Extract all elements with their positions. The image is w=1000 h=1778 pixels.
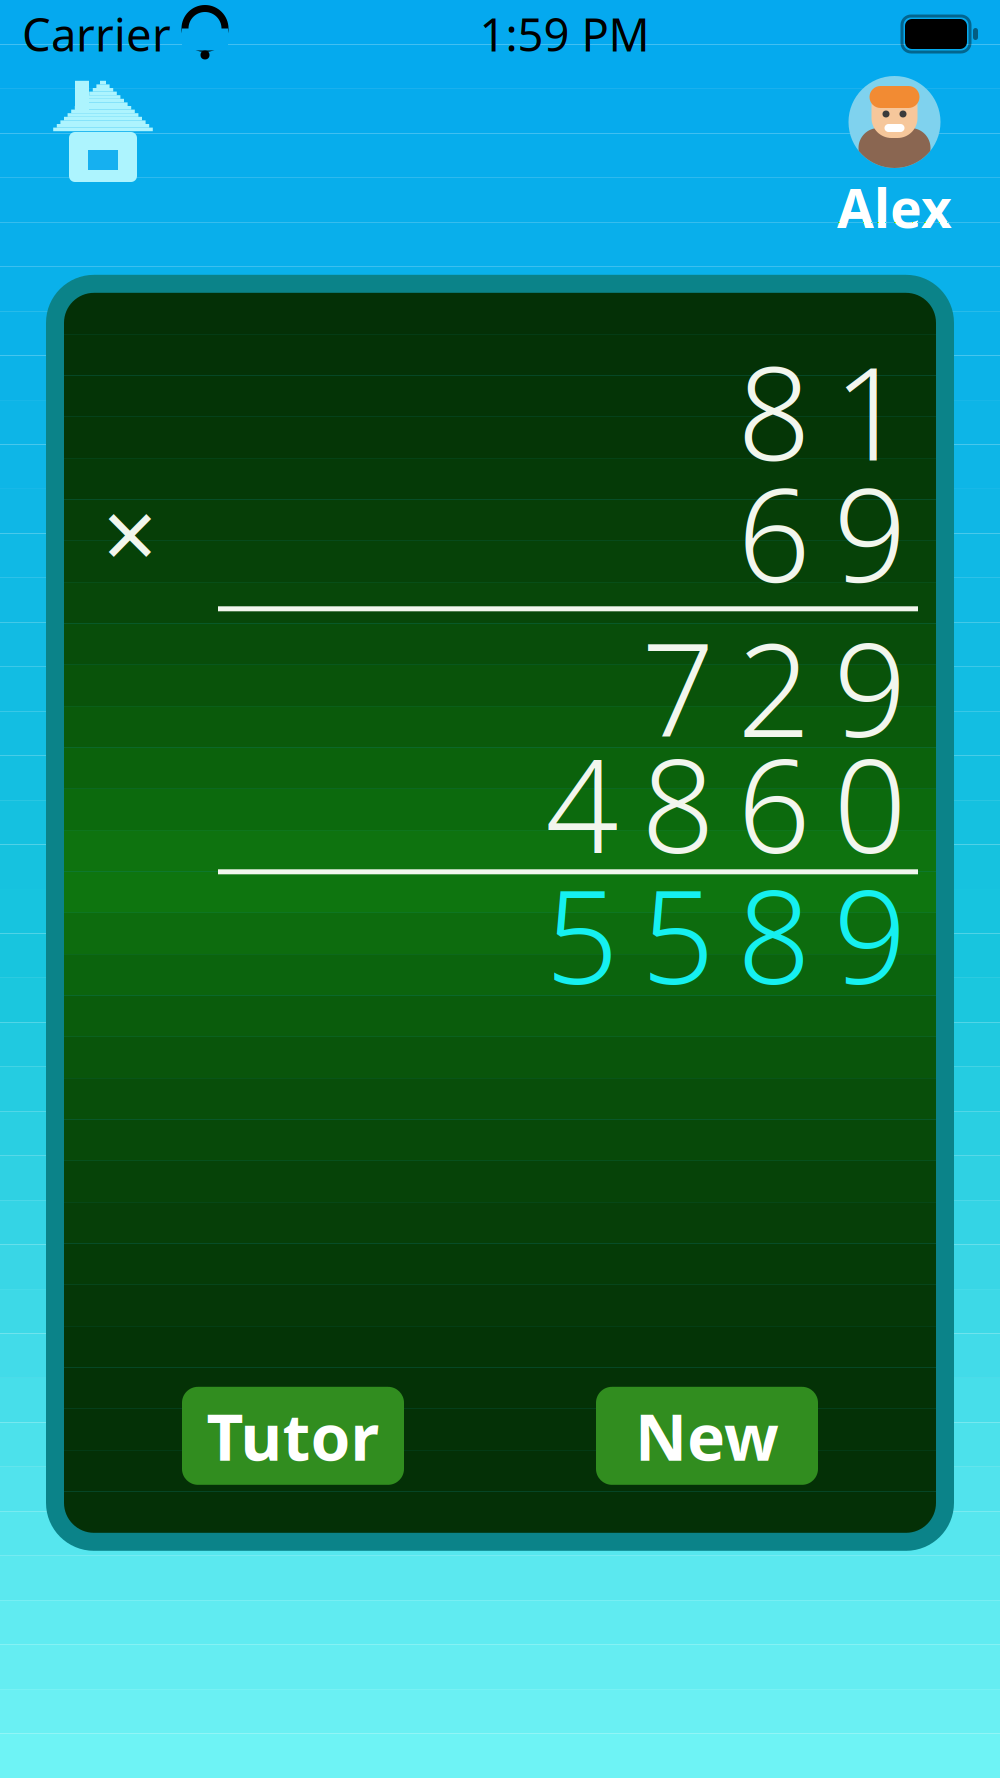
staticText: 5 — [641, 849, 714, 1019]
staticText: 9 — [833, 448, 906, 618]
staticText: 2 — [737, 602, 810, 772]
staticText: Alex — [837, 172, 952, 243]
staticText: 9 — [833, 849, 906, 1019]
staticText: 8 — [641, 718, 714, 888]
staticText: 0 — [833, 718, 906, 888]
staticText: 8 — [737, 849, 810, 1019]
button[interactable]: Alex profile — [837, 76, 952, 243]
button[interactable]: Tutor — [182, 1387, 404, 1485]
staticText: 9 — [833, 602, 906, 772]
staticText: × — [102, 469, 157, 596]
staticText: 1:59 PM — [479, 4, 649, 64]
button[interactable]: New — [596, 1387, 818, 1485]
staticText: 7 — [641, 602, 714, 772]
staticText: New — [635, 1393, 779, 1478]
staticText: 6 — [737, 448, 810, 618]
staticText: 4 — [545, 718, 618, 888]
staticText: Tutor — [206, 1393, 379, 1478]
staticText: 5 — [545, 849, 618, 1019]
staticText: 6 — [737, 718, 810, 888]
staticText: 8 — [737, 326, 810, 496]
staticText: Carrier — [22, 4, 171, 64]
staticText: 1 — [833, 326, 906, 496]
button[interactable]: Home — [48, 76, 158, 186]
